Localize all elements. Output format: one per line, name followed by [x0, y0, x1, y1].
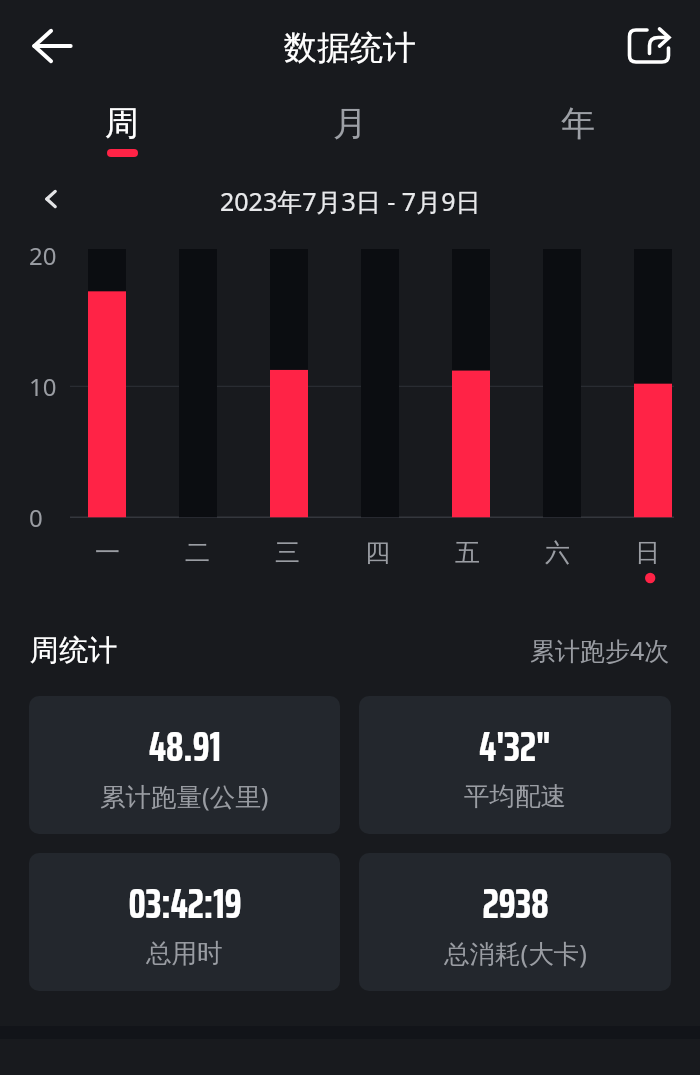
staticText: 累计跑步4次 [530, 633, 670, 667]
staticText: 2023年7月3日 - 7月9日 [220, 184, 481, 218]
button[interactable]: 月 [236, 102, 464, 157]
staticText: 10 [29, 370, 57, 403]
staticText: 年 [561, 102, 595, 145]
button[interactable]: Previous week [30, 178, 72, 220]
button[interactable]: 年 [464, 102, 692, 157]
button[interactable]: 2938 [359, 853, 671, 991]
staticText: 周统计 [30, 632, 117, 669]
staticText: 周 [105, 102, 139, 145]
button[interactable]: 4'32" [359, 696, 671, 834]
staticText: 总消耗(大卡) [444, 936, 587, 971]
button[interactable]: Back [24, 18, 80, 74]
staticText: 三 [275, 537, 300, 568]
staticText: 0 [29, 501, 43, 534]
staticText: 平均配速 [464, 780, 566, 812]
staticText: 一 [95, 537, 120, 568]
staticText: 六 [545, 537, 570, 568]
staticText: 五 [455, 537, 480, 568]
button[interactable]: Share [621, 18, 677, 74]
staticText: 二 [185, 537, 210, 568]
staticText: 四 [365, 537, 390, 568]
staticText: 累计跑量(公里) [100, 779, 269, 814]
staticText: 日 [635, 537, 660, 568]
button[interactable]: 03:42:19 [29, 853, 340, 991]
staticText: 数据统计 [284, 27, 416, 69]
staticText: 48.91 [149, 712, 221, 772]
button[interactable]: 周 [8, 102, 236, 157]
staticText: 4'32" [479, 712, 551, 772]
staticText: 2938 [482, 869, 549, 929]
staticText: 03:42:19 [128, 869, 242, 929]
staticText: 月 [333, 102, 367, 145]
staticText: 20 [29, 239, 57, 272]
button[interactable]: 48.91 [29, 696, 340, 834]
staticText: 总用时 [146, 937, 223, 969]
